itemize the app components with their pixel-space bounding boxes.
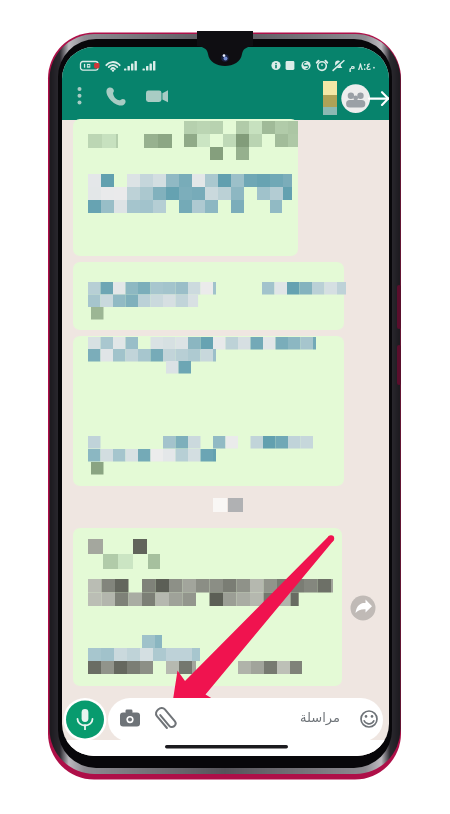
button[interactable]: Forward: [350, 595, 378, 623]
button[interactable]: Camera: [116, 702, 148, 736]
button[interactable]: Attach: [152, 702, 184, 736]
button[interactable]: Voice call: [98, 80, 130, 112]
staticText: مراسلة: [300, 710, 340, 725]
button[interactable]: Emoji: [356, 702, 384, 736]
button[interactable]: More options: [70, 80, 92, 112]
staticText: ٨:٤٠ م: [349, 59, 377, 73]
button[interactable]: Voice message: [66, 700, 106, 740]
button[interactable]: Back: [340, 82, 382, 116]
button[interactable]: Video call: [138, 80, 174, 112]
